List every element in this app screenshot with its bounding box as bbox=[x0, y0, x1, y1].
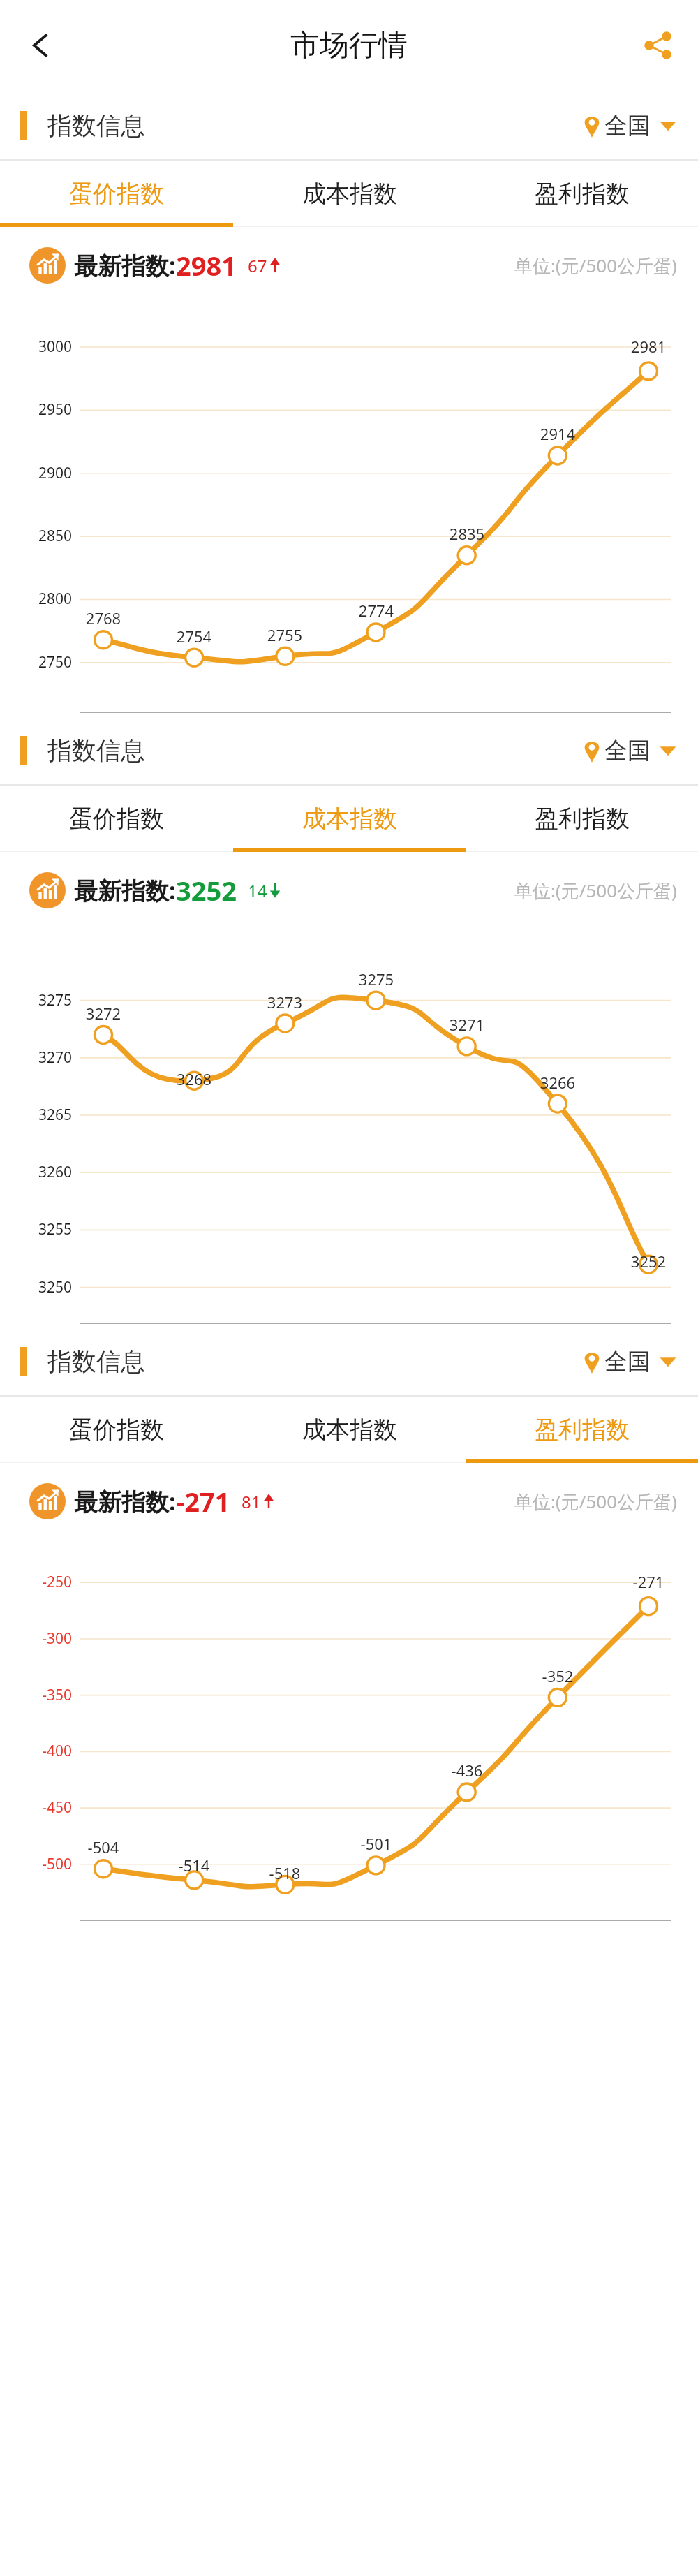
staticText: -352 bbox=[531, 1665, 584, 1686]
staticText: 14 bbox=[248, 879, 267, 902]
staticText: 2835 bbox=[440, 523, 493, 544]
staticText: 81 bbox=[242, 1490, 261, 1513]
button[interactable]: 全国 bbox=[579, 730, 680, 771]
staticText: 2800 bbox=[0, 589, 72, 609]
staticText: 3265 bbox=[0, 1105, 72, 1125]
button[interactable]: 盈利指数 bbox=[466, 1397, 698, 1463]
button[interactable]: Share bbox=[632, 20, 683, 71]
staticText: 3271 bbox=[440, 1014, 493, 1035]
staticText: 3000 bbox=[0, 337, 72, 357]
staticText: 最新指数: bbox=[74, 1485, 176, 1517]
button[interactable]: 盈利指数 bbox=[466, 786, 698, 852]
staticText: 2774 bbox=[350, 600, 403, 621]
staticText: 3275 bbox=[350, 969, 403, 989]
staticText: 2981 bbox=[176, 247, 237, 284]
button[interactable]: 蛋价指数 bbox=[0, 161, 233, 227]
staticText: -501 bbox=[350, 1833, 403, 1854]
staticText: 最新指数: bbox=[74, 249, 176, 281]
staticText: 3270 bbox=[0, 1047, 72, 1068]
staticText: 2755 bbox=[258, 624, 311, 645]
staticText: -300 bbox=[0, 1628, 72, 1649]
staticText: 全国 bbox=[604, 736, 651, 765]
staticText: -500 bbox=[0, 1854, 72, 1874]
button[interactable]: Back bbox=[15, 20, 66, 71]
staticText: 2754 bbox=[168, 626, 221, 647]
staticText: -518 bbox=[258, 1862, 311, 1883]
staticText: -514 bbox=[168, 1855, 221, 1876]
staticText: 单位:(元/500公斤蛋) bbox=[514, 1489, 677, 1514]
staticText: 3272 bbox=[77, 1003, 130, 1024]
staticText: 单位:(元/500公斤蛋) bbox=[514, 253, 677, 278]
staticText: 成本指数 bbox=[302, 804, 397, 834]
button[interactable]: 全国 bbox=[579, 1341, 680, 1382]
staticText: 2768 bbox=[77, 608, 130, 628]
staticText: -271 bbox=[176, 1483, 230, 1519]
staticText: -250 bbox=[0, 1572, 72, 1592]
button[interactable]: 成本指数 bbox=[233, 161, 466, 227]
staticText: 蛋价指数 bbox=[69, 1415, 164, 1445]
staticText: 最新指数: bbox=[74, 874, 176, 906]
staticText: 盈利指数 bbox=[535, 179, 630, 209]
staticText: 蛋价指数 bbox=[69, 804, 164, 834]
staticText: 2750 bbox=[0, 652, 72, 672]
staticText: 2900 bbox=[0, 463, 72, 483]
staticText: 3250 bbox=[0, 1277, 72, 1297]
button[interactable]: 盈利指数 bbox=[466, 161, 698, 227]
staticText: 市场行情 bbox=[290, 27, 408, 64]
staticText: 3273 bbox=[258, 992, 311, 1013]
staticText: 2914 bbox=[531, 423, 584, 444]
staticText: -400 bbox=[0, 1741, 72, 1761]
staticText: 蛋价指数 bbox=[69, 179, 164, 209]
staticText: 3266 bbox=[531, 1072, 584, 1093]
staticText: -450 bbox=[0, 1797, 72, 1818]
staticText: 3252 bbox=[176, 872, 237, 908]
staticText: 成本指数 bbox=[302, 179, 397, 209]
staticText: 3268 bbox=[168, 1068, 221, 1089]
staticText: 单位:(元/500公斤蛋) bbox=[514, 878, 677, 903]
staticText: 盈利指数 bbox=[535, 804, 630, 834]
staticText: 指数信息 bbox=[47, 1346, 145, 1377]
staticText: 3255 bbox=[0, 1219, 72, 1239]
staticText: 盈利指数 bbox=[535, 1415, 630, 1445]
staticText: 67 bbox=[248, 254, 267, 277]
staticText: 全国 bbox=[604, 1347, 651, 1376]
staticText: 全国 bbox=[604, 111, 651, 140]
button[interactable]: 成本指数 bbox=[233, 786, 466, 852]
staticText: 2950 bbox=[0, 399, 72, 420]
staticText: 指数信息 bbox=[47, 735, 145, 766]
button[interactable]: 蛋价指数 bbox=[0, 1397, 233, 1463]
staticText: -504 bbox=[77, 1837, 130, 1857]
button[interactable]: 全国 bbox=[579, 105, 680, 146]
staticText: -271 bbox=[622, 1571, 675, 1592]
staticText: 2850 bbox=[0, 526, 72, 546]
staticText: -436 bbox=[440, 1760, 493, 1781]
button[interactable]: 蛋价指数 bbox=[0, 786, 233, 852]
button[interactable]: 成本指数 bbox=[233, 1397, 466, 1463]
staticText: 3260 bbox=[0, 1162, 72, 1182]
staticText: 3275 bbox=[0, 990, 72, 1010]
staticText: 3252 bbox=[622, 1251, 675, 1272]
staticText: -350 bbox=[0, 1685, 72, 1705]
staticText: 2981 bbox=[622, 336, 675, 357]
staticText: 指数信息 bbox=[47, 110, 145, 141]
staticText: 成本指数 bbox=[302, 1415, 397, 1445]
